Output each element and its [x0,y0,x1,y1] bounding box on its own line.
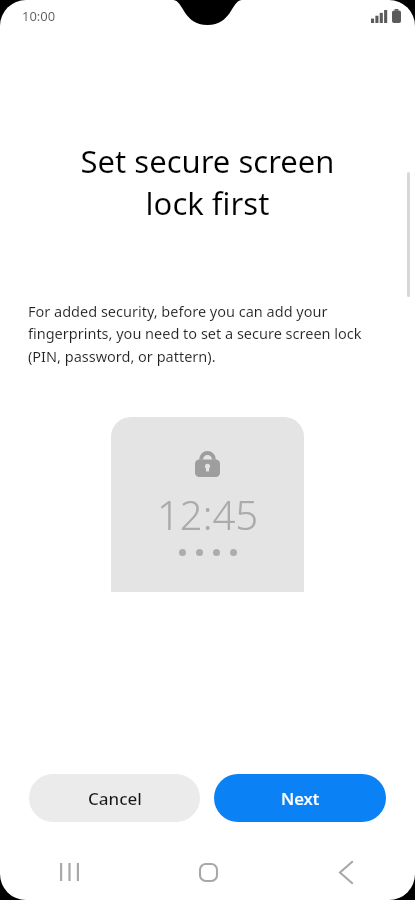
staticText: Next [281,787,320,810]
staticText: 10:00 [22,7,56,25]
button[interactable]: Back [277,844,415,900]
staticText: 12:45 [157,487,259,541]
staticText: Set secure screen lock first [26,140,389,224]
button[interactable]: Recent apps [0,844,139,900]
button[interactable]: Home [139,844,277,900]
button[interactable]: Next [214,774,386,822]
staticText: For added security, before you can add y… [28,301,393,366]
staticText: Cancel [88,787,142,810]
button[interactable]: Cancel [29,774,200,822]
